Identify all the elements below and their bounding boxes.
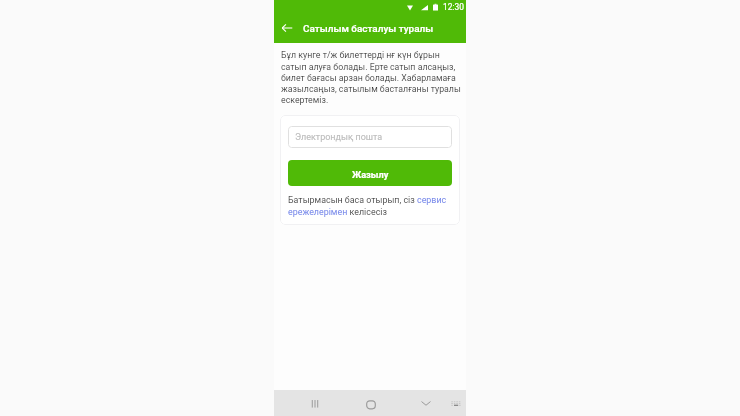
button[interactable]: Back — [414, 390, 438, 416]
staticText: Электрондық пошта — [295, 132, 383, 143]
button[interactable]: Back — [277, 18, 297, 38]
button[interactable]: Жазылу — [288, 160, 452, 186]
button[interactable]: Keyboard — [445, 390, 466, 416]
staticText: 12:30 — [443, 2, 464, 12]
staticText: Бұл кунге т/ж билеттерді нғ күн бұрын са… — [281, 50, 463, 105]
button[interactable]: Recent apps — [303, 390, 327, 416]
staticText: Жазылу — [352, 169, 389, 180]
button[interactable]: Электрондық пошта — [288, 126, 452, 148]
staticText: Сатылым басталуы туралы — [303, 23, 434, 35]
staticText: Батырмасын баса отырып, сіз сервис ереже… — [288, 195, 452, 217]
button[interactable]: Home — [359, 390, 383, 416]
